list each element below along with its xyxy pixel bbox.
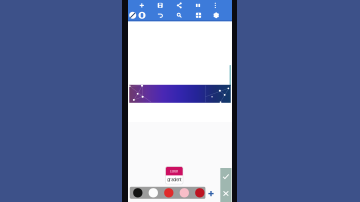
staticText: gradient xyxy=(167,177,181,182)
button[interactable]: Fill colour xyxy=(133,10,150,20)
button[interactable]: Add colour xyxy=(204,188,217,199)
button[interactable]: Search xyxy=(171,10,188,20)
button[interactable]: Colour swatch xyxy=(162,187,176,199)
button[interactable]: Colour swatch xyxy=(146,187,160,199)
button[interactable]: Save xyxy=(152,0,169,10)
staticText: color xyxy=(170,169,179,173)
button[interactable]: Undo xyxy=(152,10,169,20)
button[interactable]: color xyxy=(166,167,183,176)
button[interactable]: Colour swatch xyxy=(177,187,191,199)
button[interactable]: Resize canvas xyxy=(189,0,206,10)
button[interactable]: Colour swatch xyxy=(193,187,207,199)
button[interactable]: Add xyxy=(133,0,150,10)
button[interactable]: Cancel xyxy=(220,185,231,202)
button[interactable]: Colour swatch xyxy=(131,187,145,199)
button[interactable]: No fill xyxy=(124,10,141,20)
button[interactable]: Layers xyxy=(190,10,207,20)
button[interactable]: gradient xyxy=(166,176,183,184)
button[interactable]: Effects xyxy=(208,10,225,20)
button[interactable]: Share xyxy=(171,0,188,10)
button[interactable]: Apply xyxy=(220,168,231,185)
button[interactable]: More options xyxy=(207,0,224,10)
